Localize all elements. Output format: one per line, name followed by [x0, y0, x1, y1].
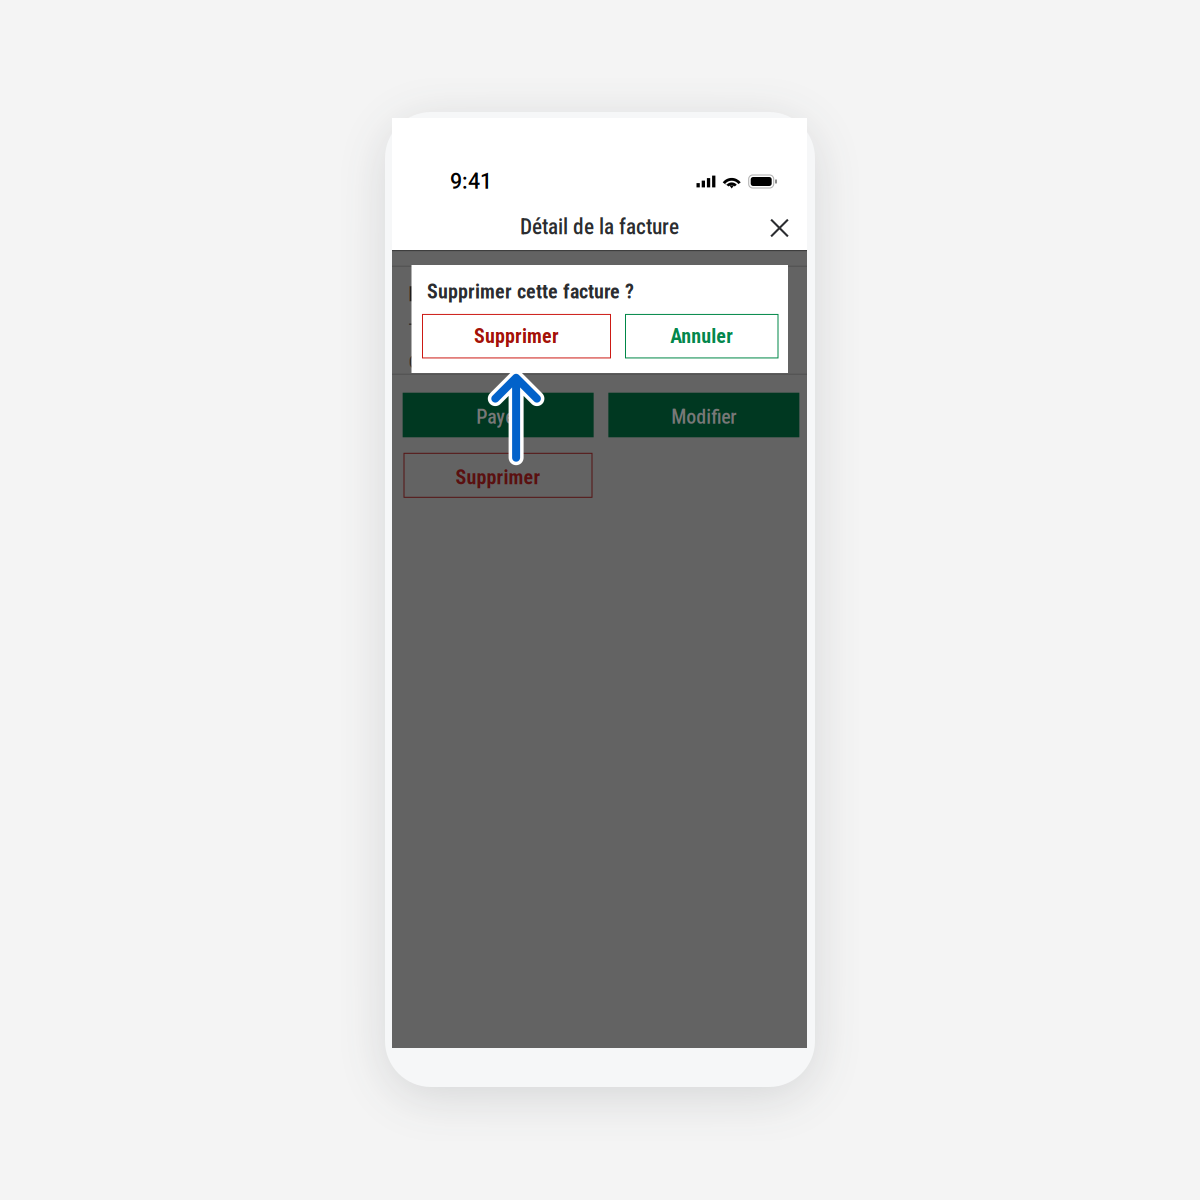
staticText: Modifier: [671, 405, 736, 429]
button[interactable]: Fermer: [757, 206, 801, 250]
staticText: Facture #2024-0142: [408, 283, 570, 306]
button[interactable]: Supprimer: [422, 314, 610, 358]
button[interactable]: Payer: [403, 393, 594, 437]
staticText: Supprimer: [474, 324, 559, 348]
staticText: 9:41: [450, 169, 492, 194]
staticText: Payer: [476, 405, 520, 429]
button[interactable]: Modifier: [608, 393, 799, 437]
staticText: Supprimer: [455, 466, 540, 489]
staticText: Total : 1 250,00 €: [408, 319, 532, 341]
button[interactable]: Supprimer: [404, 453, 592, 497]
staticText: Supprimer cette facture ?: [427, 280, 634, 303]
button[interactable]: Annuler: [625, 314, 778, 358]
staticText: Annuler: [670, 324, 733, 348]
staticText: Client : Dupont SARL: [408, 351, 560, 373]
staticText: Détail de la facture: [520, 214, 679, 239]
